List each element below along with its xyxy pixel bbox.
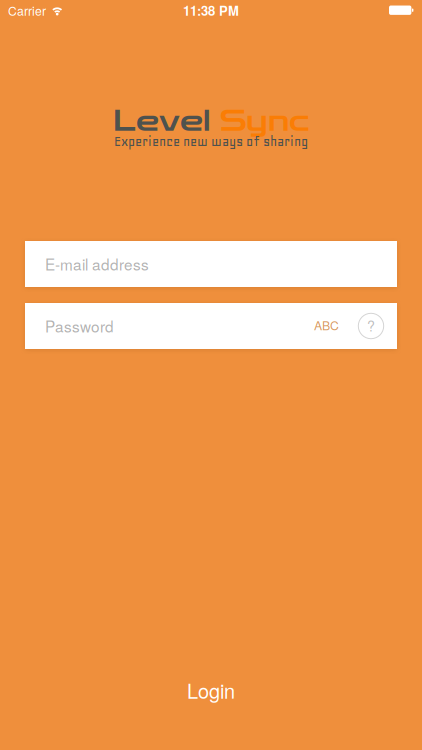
button[interactable]: Password help — [358, 313, 384, 339]
staticText: ? — [367, 315, 375, 336]
staticText: 11:38 PM — [183, 1, 239, 20]
staticText: Login — [187, 676, 235, 704]
staticText: E-mail address — [45, 253, 149, 275]
button[interactable]: ABC — [314, 317, 339, 335]
staticText: Carrier — [8, 2, 46, 19]
staticText: Sync — [210, 103, 309, 139]
staticText: Password — [45, 315, 114, 337]
staticText: Experience new ways of sharing — [114, 134, 308, 149]
button[interactable]: Login — [0, 665, 422, 715]
staticText: Level — [113, 103, 210, 139]
staticText: ABC — [314, 316, 339, 334]
